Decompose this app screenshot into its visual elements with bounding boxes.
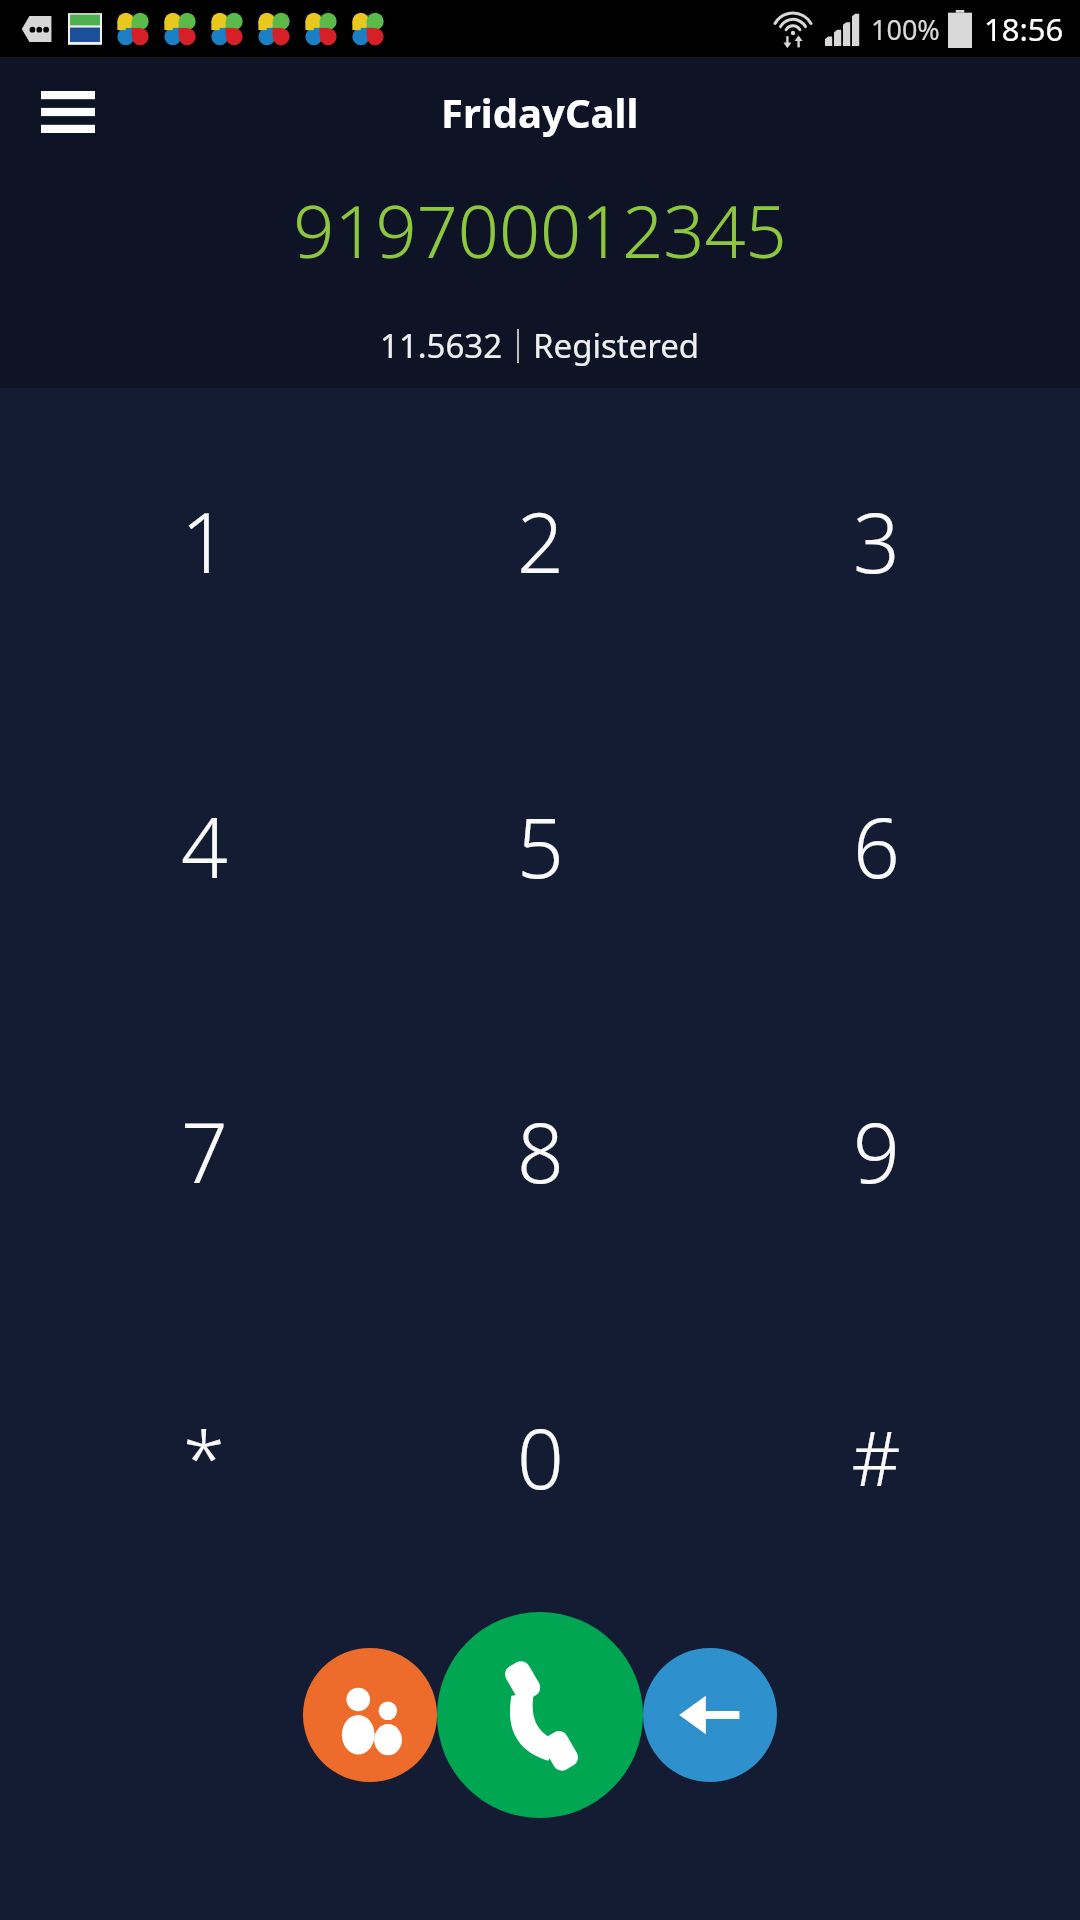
button[interactable]: 6 [708, 693, 1044, 998]
staticText: 5 [517, 790, 564, 902]
staticText: 1 [181, 485, 228, 597]
button[interactable]: 2 [372, 388, 708, 693]
staticText: 4 [181, 790, 228, 902]
staticText: 2 [517, 485, 564, 597]
staticText: * [183, 1405, 225, 1509]
button[interactable]: 5 [372, 693, 708, 998]
staticText: 7 [181, 1095, 228, 1207]
button[interactable]: * [36, 1304, 372, 1610]
button[interactable]: Contacts [303, 1648, 437, 1782]
button[interactable]: Call [437, 1612, 643, 1818]
staticText: FridayCall [441, 85, 639, 139]
staticText: 0 [517, 1401, 564, 1513]
staticText: 18:56 [984, 8, 1064, 50]
staticText: 8 [517, 1095, 564, 1207]
staticText: # [851, 1405, 901, 1509]
button[interactable]: 8 [372, 998, 708, 1304]
button[interactable]: # [708, 1304, 1044, 1610]
button[interactable]: 9 [708, 998, 1044, 1304]
button[interactable]: 1 [36, 388, 372, 693]
button[interactable]: Backspace [643, 1648, 777, 1782]
staticText: 9 [853, 1095, 900, 1207]
button[interactable]: Open navigation menu [22, 66, 114, 158]
staticText: 11.5632 [380, 323, 503, 368]
button[interactable]: 0 [372, 1304, 708, 1610]
staticText: 100% [871, 11, 940, 48]
button[interactable]: 3 [708, 388, 1044, 693]
button[interactable]: 7 [36, 998, 372, 1304]
staticText: 919700012345 [293, 181, 787, 279]
staticText: 6 [853, 790, 900, 902]
staticText: Registered [533, 323, 700, 368]
staticText: 3 [853, 485, 900, 597]
button[interactable]: 4 [36, 693, 372, 998]
